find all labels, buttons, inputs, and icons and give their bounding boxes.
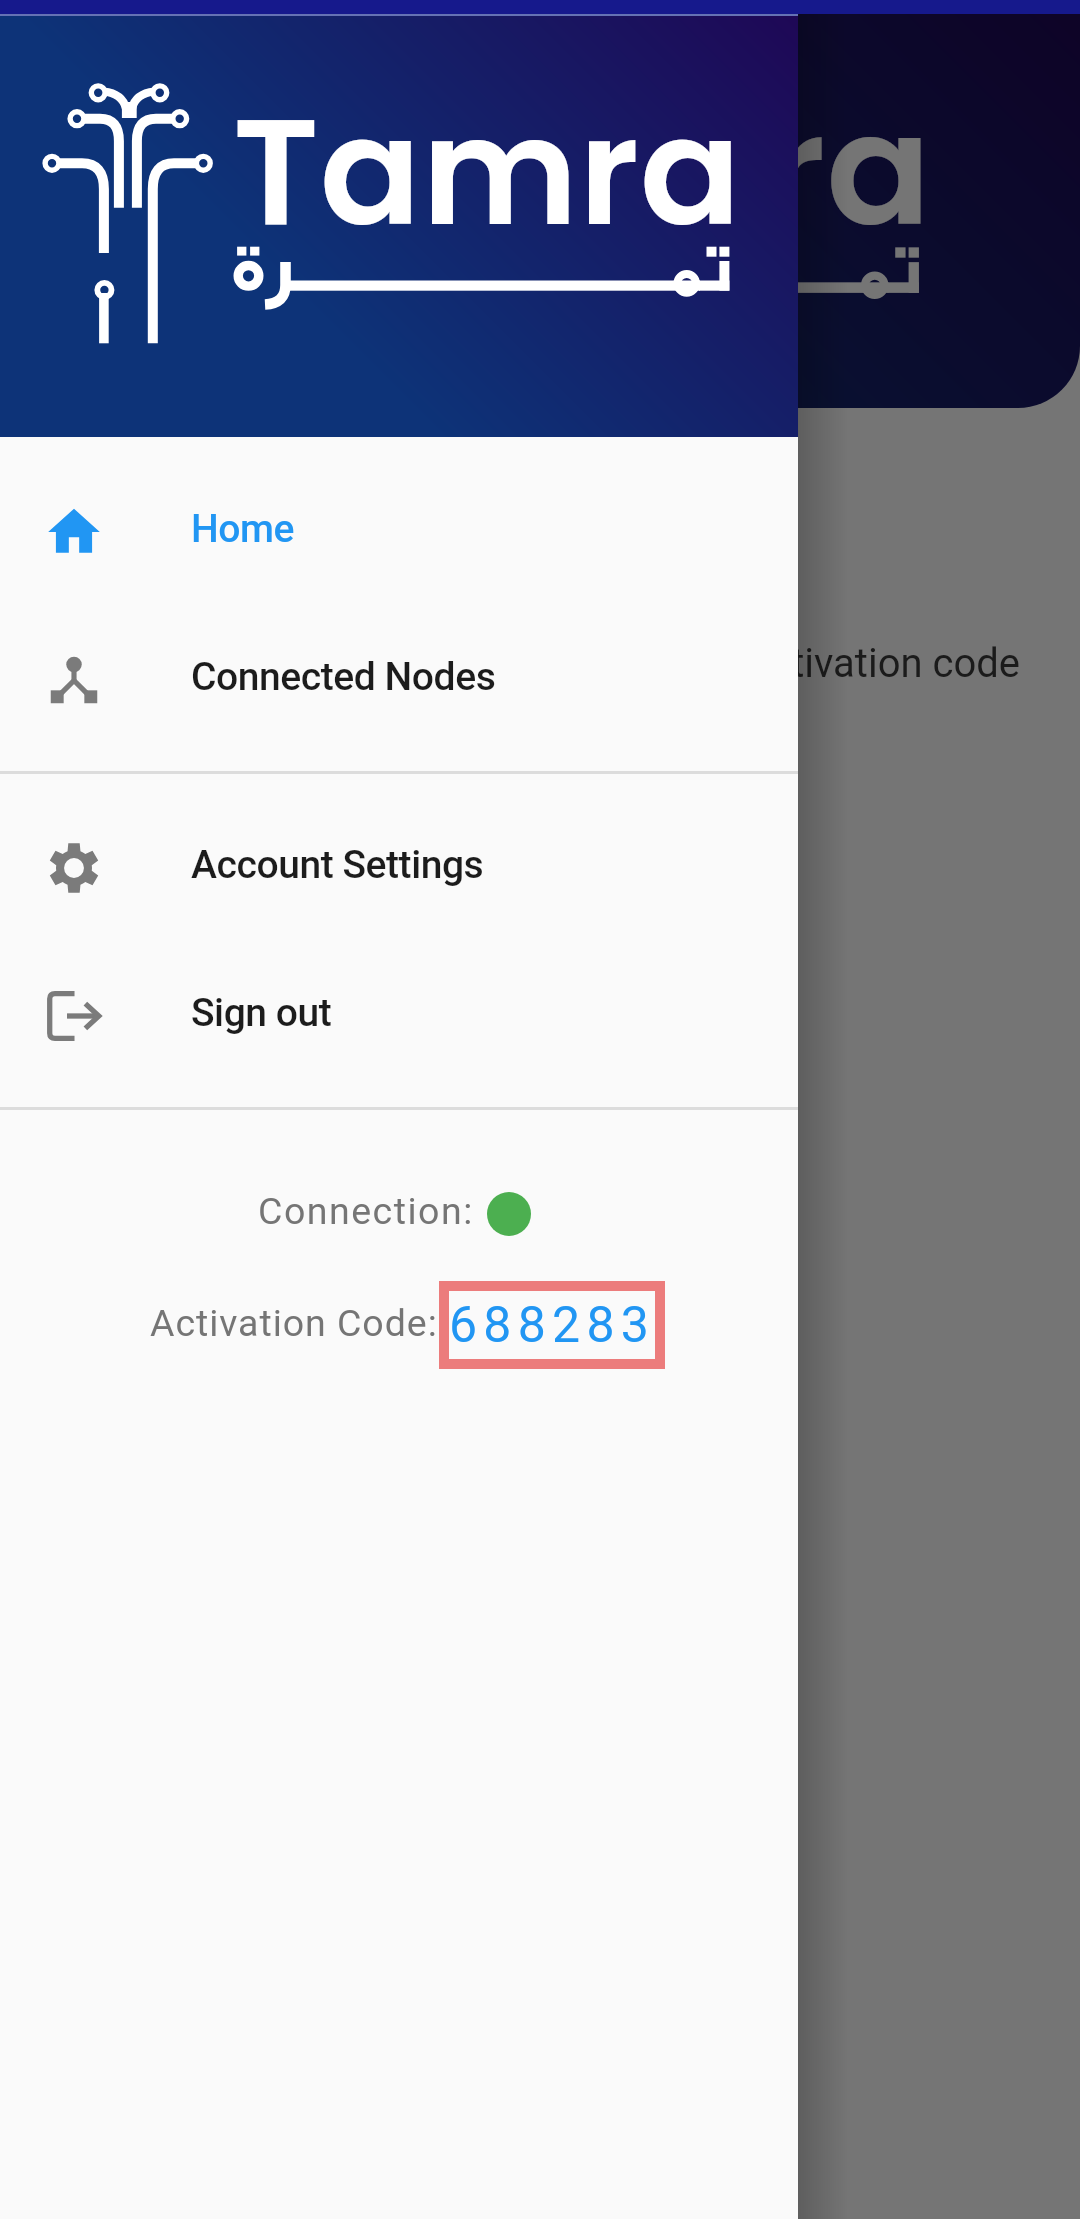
staticText: Account Settings <box>191 842 484 888</box>
button[interactable]: Sign out <box>0 942 798 1090</box>
staticText: Activation Code: <box>150 1301 438 1345</box>
staticText: Home <box>191 506 295 552</box>
button[interactable]: Tamra <box>0 0 798 437</box>
staticText: 688283 <box>449 1296 656 1355</box>
staticText: Sign out <box>191 990 332 1036</box>
button[interactable]: Connected Nodes <box>0 606 798 754</box>
staticText: Tamra <box>405 62 932 278</box>
staticText: Connection: <box>258 1189 474 1233</box>
staticText: Tamra <box>233 68 742 277</box>
button[interactable]: Close navigation drawer <box>0 0 1080 2219</box>
button[interactable]: Account Settings <box>0 794 798 942</box>
button[interactable]: Home <box>0 458 798 606</box>
staticText: Connected Nodes <box>191 654 496 700</box>
staticText: Enter your activation code <box>540 640 1020 687</box>
button[interactable]: Activation code 688283 <box>439 1281 665 1369</box>
